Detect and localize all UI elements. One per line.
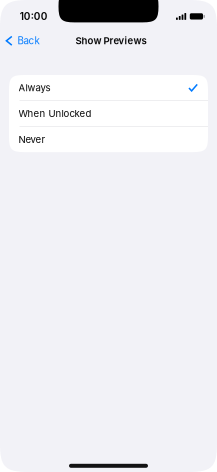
button[interactable]: When Unlocked bbox=[9, 101, 208, 126]
staticText: When Unlocked bbox=[18, 108, 91, 119]
staticText: Show Previews bbox=[75, 35, 146, 47]
staticText: Always bbox=[18, 82, 50, 93]
button[interactable]: Never bbox=[9, 127, 208, 152]
staticText: 10:00 bbox=[20, 10, 48, 22]
staticText: Back bbox=[17, 35, 39, 47]
button[interactable]: Always bbox=[9, 75, 208, 100]
button[interactable]: Back bbox=[0, 30, 43, 52]
staticText: Never bbox=[18, 134, 45, 145]
